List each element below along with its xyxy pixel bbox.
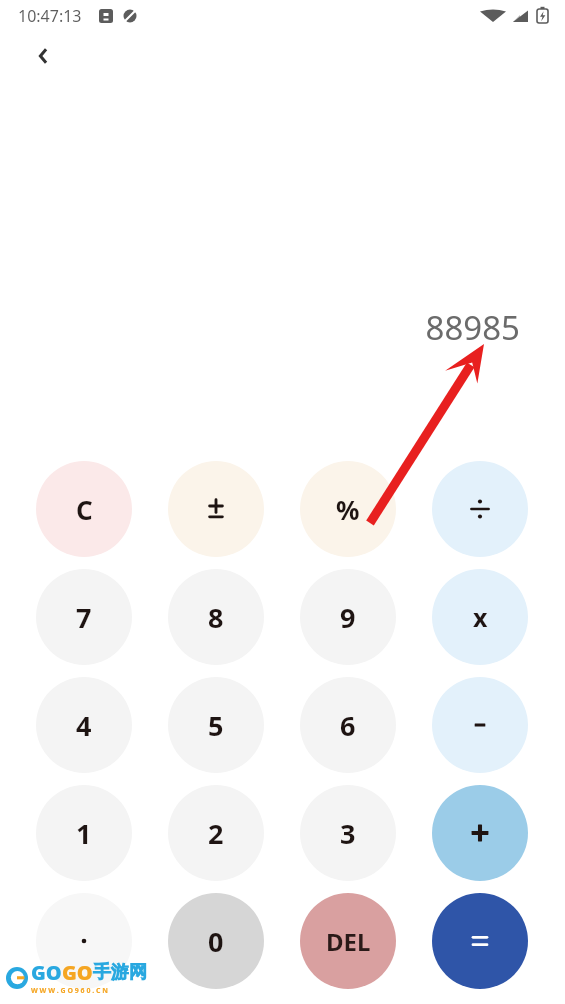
button[interactable]: Delete [300, 893, 396, 989]
staticText: 8 [208, 599, 224, 636]
staticText: GO [31, 959, 62, 986]
button[interactable]: 7 [36, 569, 132, 665]
staticText: 1 [76, 815, 92, 852]
button[interactable]: 3 [300, 785, 396, 881]
staticText: 6 [340, 707, 356, 744]
staticText: GO [62, 959, 93, 986]
button[interactable]: Plus minus [168, 461, 264, 557]
button[interactable]: 8 [168, 569, 264, 665]
button[interactable]: Equals [432, 893, 528, 989]
button[interactable]: 1 [36, 785, 132, 881]
staticText: % [336, 492, 360, 527]
button[interactable]: 2 [168, 785, 264, 881]
button[interactable]: Percent [300, 461, 396, 557]
staticText: DEL [326, 925, 371, 958]
button[interactable]: 6 [300, 677, 396, 773]
staticText: 88985 [425, 305, 520, 350]
staticText: 10:47:13 [18, 5, 82, 27]
staticText: 5 [208, 707, 224, 744]
staticText: 4 [76, 707, 92, 744]
staticText: 3 [340, 815, 356, 852]
button[interactable]: 0 [168, 893, 264, 989]
staticText: W W W . G O 9 6 0 . C N [31, 986, 109, 996]
button[interactable]: 9 [300, 569, 396, 665]
staticText: 2 [208, 815, 224, 852]
button[interactable]: Multiply [432, 569, 528, 665]
button[interactable]: Divide [432, 461, 528, 557]
staticText: 手游网 [93, 961, 147, 984]
button[interactable]: Minus [432, 677, 528, 773]
staticText: 0 [208, 923, 224, 960]
staticText: x [473, 600, 488, 634]
button[interactable]: 5 [168, 677, 264, 773]
button[interactable]: Decimal point [36, 893, 132, 989]
button[interactable]: Plus [432, 785, 528, 881]
button[interactable]: Clear [36, 461, 132, 557]
staticText: C [76, 492, 93, 527]
button[interactable]: 4 [36, 677, 132, 773]
button[interactable]: Back [14, 32, 74, 80]
staticText: 7 [76, 599, 92, 636]
staticText: 9 [340, 599, 356, 636]
